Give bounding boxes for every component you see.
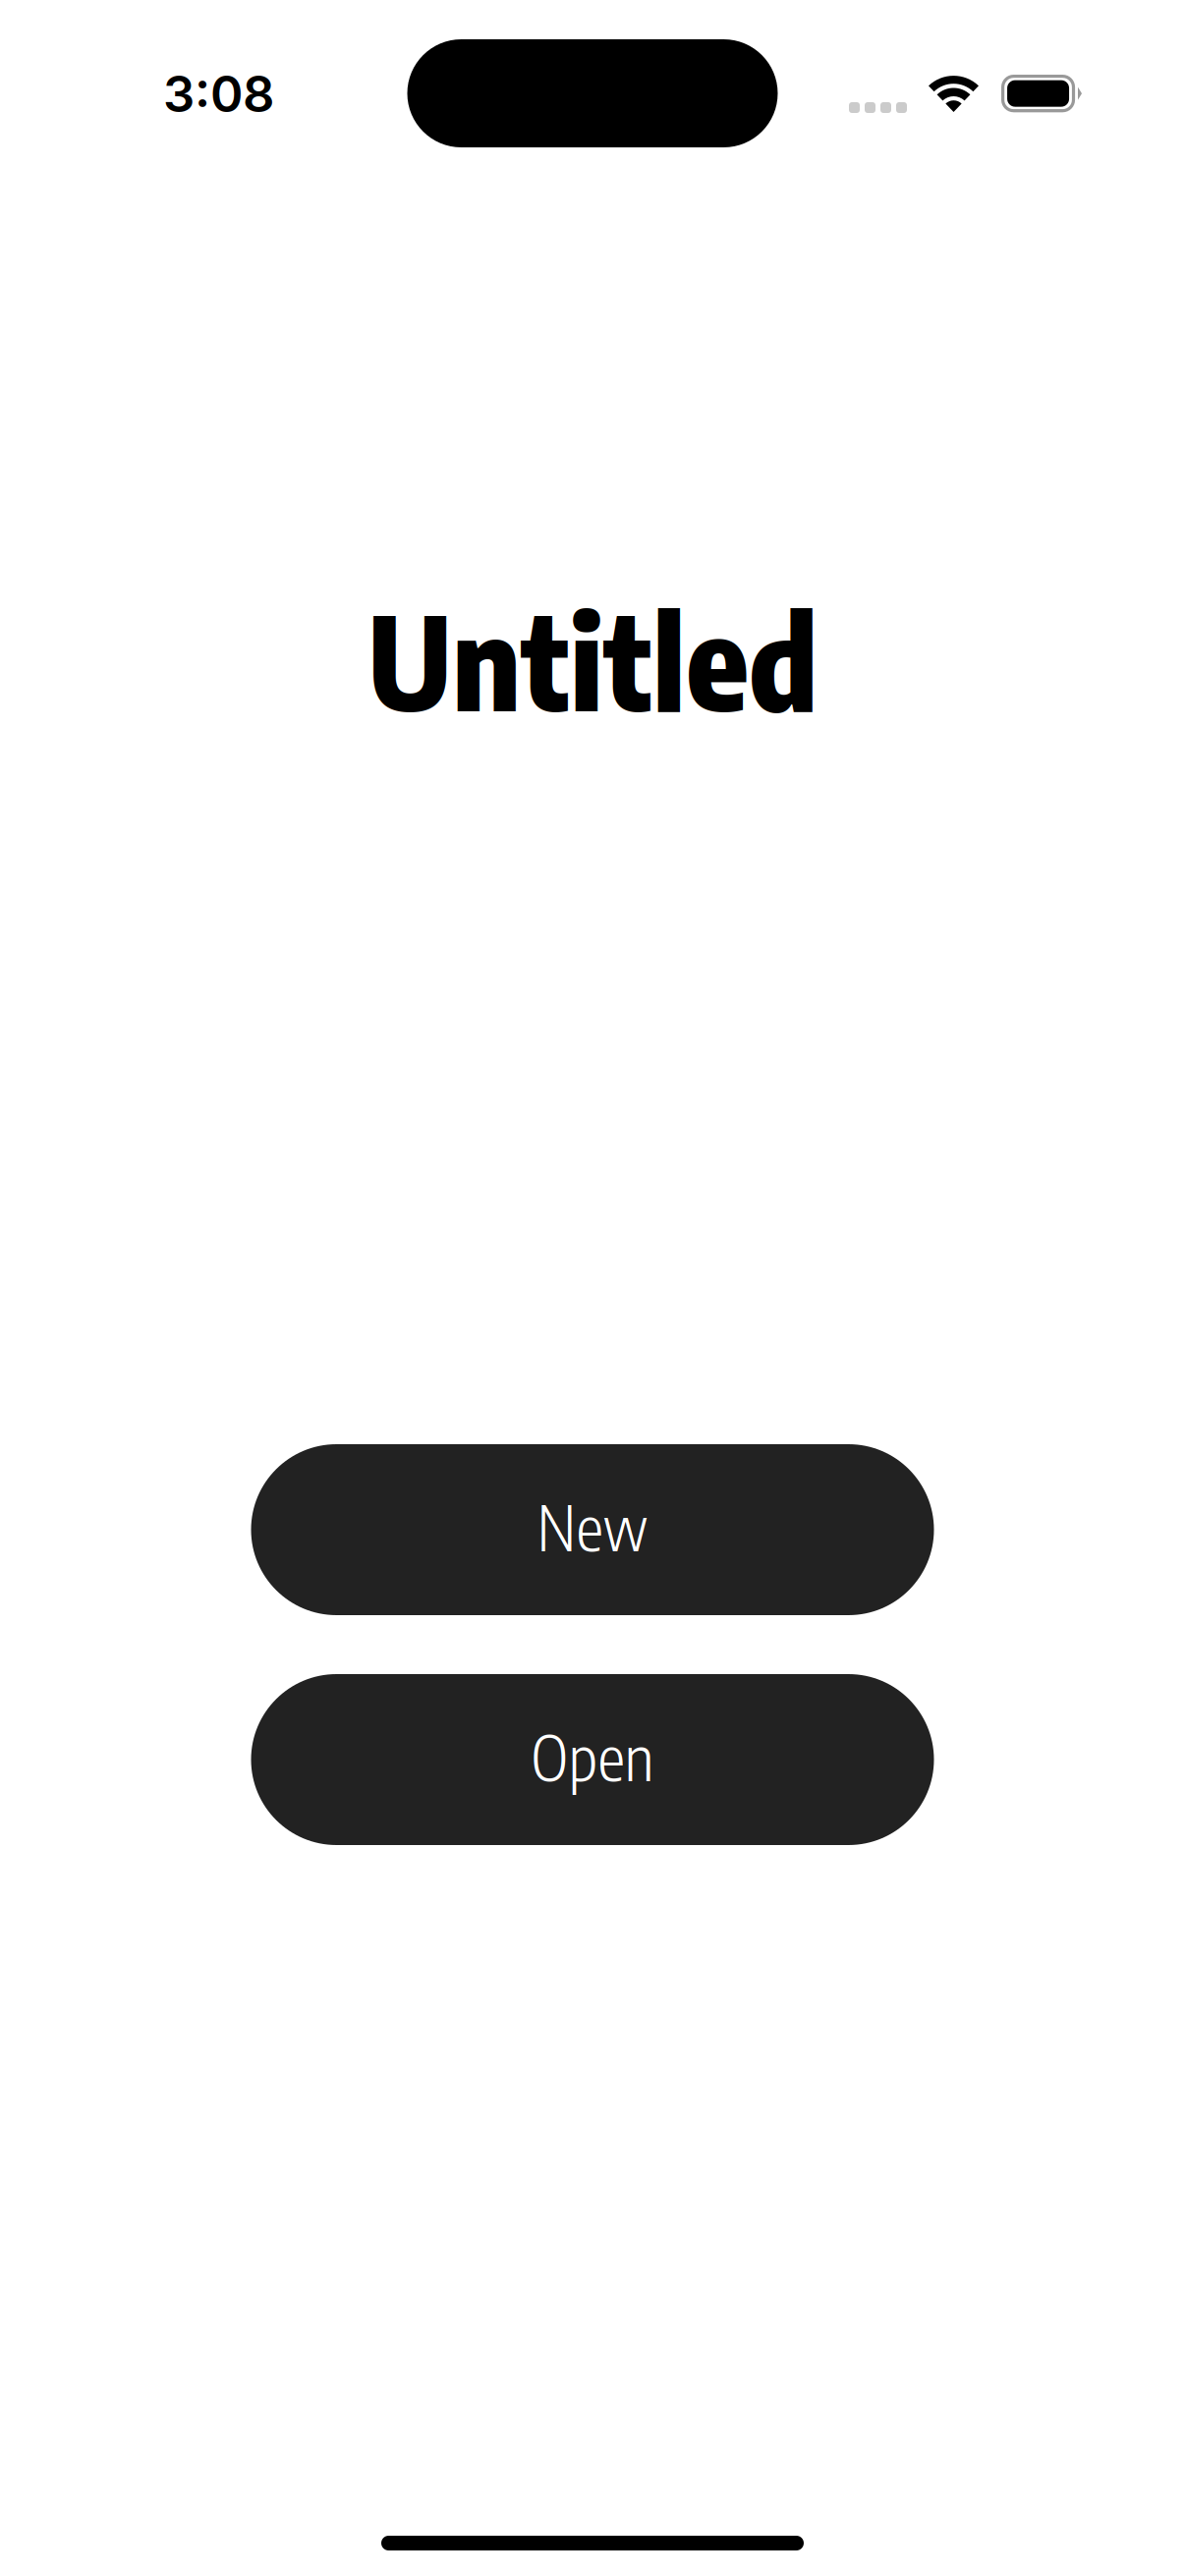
staticText: Untitled	[367, 579, 818, 739]
staticText: Open	[531, 1718, 654, 1795]
button[interactable]: New	[251, 1444, 934, 1615]
staticText: New	[537, 1488, 648, 1565]
staticText: 3:08	[163, 64, 274, 124]
button[interactable]: Open	[251, 1674, 934, 1845]
